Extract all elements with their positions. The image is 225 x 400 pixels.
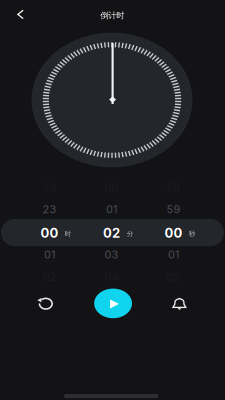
button[interactable]: Back (13, 7, 27, 21)
button[interactable]: Start (94, 288, 132, 318)
staticText: 倒计时 (100, 10, 124, 21)
staticText: 00 (41, 225, 59, 241)
staticText: 01 (168, 248, 179, 261)
staticText: 01 (106, 203, 117, 216)
staticText: 00 (165, 225, 183, 241)
staticText: 03 (105, 248, 119, 261)
staticText: 分 (127, 230, 134, 238)
button[interactable]: Alert sound (171, 298, 187, 312)
button[interactable]: Reset (37, 296, 55, 312)
staticText: 59 (167, 203, 181, 216)
staticText: 时 (65, 230, 72, 238)
staticText: 01 (44, 248, 55, 261)
staticText: 23 (43, 203, 57, 216)
staticText: 02 (103, 225, 120, 241)
staticText: 秒 (189, 230, 196, 238)
